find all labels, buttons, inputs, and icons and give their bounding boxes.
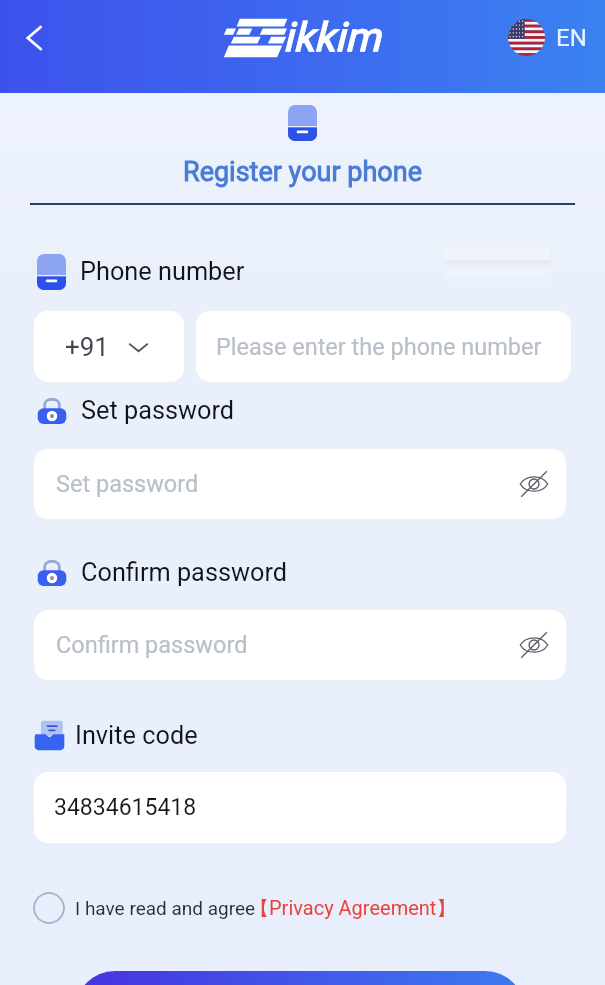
button[interactable]: EN [508, 19, 587, 56]
button[interactable]: I have read and agree [33, 892, 464, 924]
staticText: Confirm password [81, 558, 288, 588]
staticText: 34834615418 [54, 794, 197, 821]
staticText: ikkim [283, 14, 381, 61]
button[interactable]: Please enter the phone number [196, 311, 571, 382]
button[interactable]: Show password [514, 625, 554, 665]
button[interactable]: Back [12, 16, 56, 60]
staticText: Please enter the phone number [216, 333, 542, 361]
staticText: Set password [56, 470, 199, 498]
button[interactable]: +91 [34, 311, 184, 382]
button[interactable]: Confirm password [34, 610, 566, 680]
staticText: Phone number [80, 257, 245, 287]
staticText: Confirm password [56, 631, 248, 659]
button[interactable]: Register [75, 971, 525, 985]
staticText: 【Privacy Agreement】 [249, 896, 457, 921]
button[interactable]: Set password [34, 449, 566, 519]
staticText: Register your phone [183, 156, 422, 188]
staticText: I have read and agree [75, 897, 256, 919]
button[interactable]: Show password [514, 464, 554, 504]
staticText: +91 [65, 332, 109, 362]
staticText: Invite code [75, 721, 198, 751]
staticText: EN [556, 24, 587, 52]
button[interactable]: 34834615418 [34, 772, 566, 843]
staticText: Set password [81, 396, 235, 426]
